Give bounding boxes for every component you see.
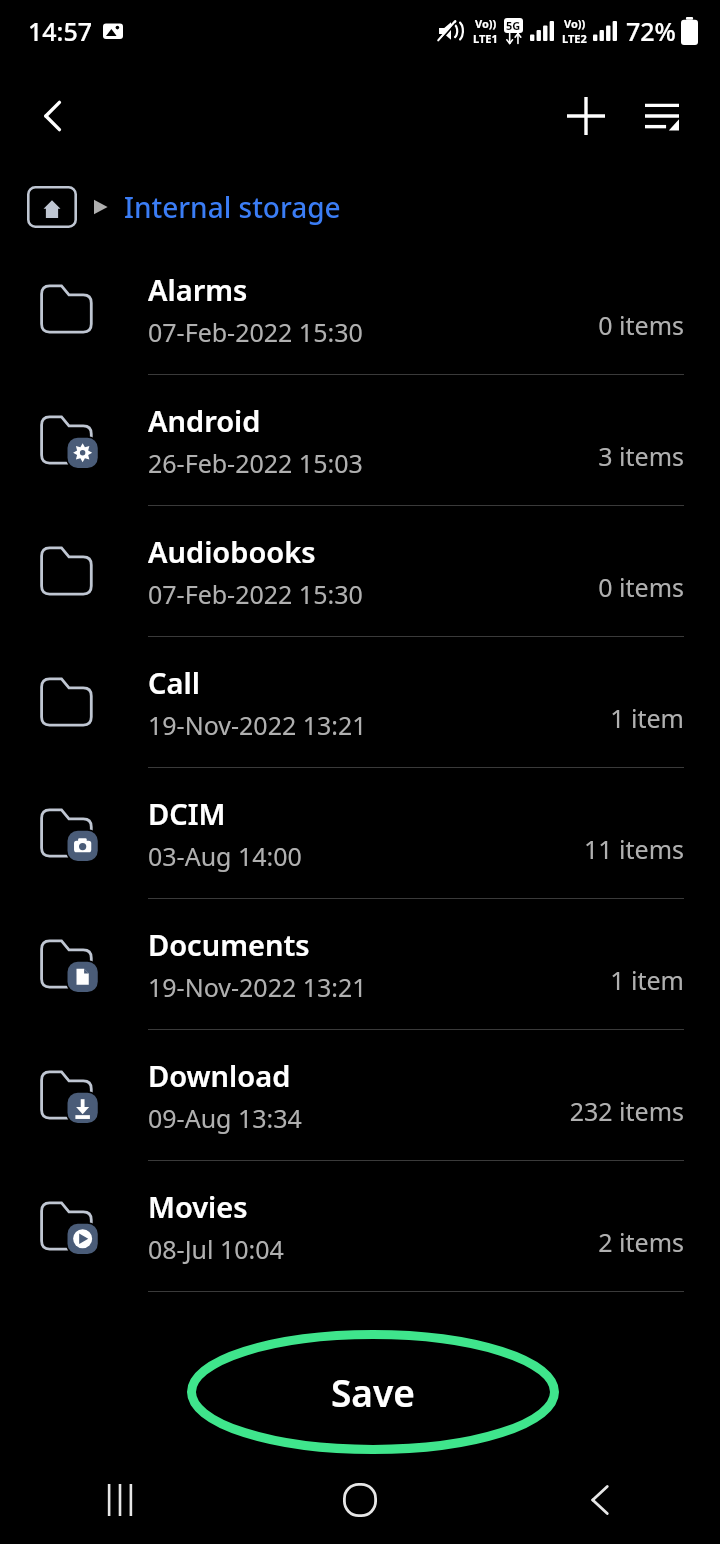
button[interactable]: Call (0, 637, 720, 767)
button[interactable]: Alarms (0, 244, 720, 374)
button[interactable]: Movies (0, 1161, 720, 1291)
button[interactable]: Back (480, 1456, 720, 1544)
staticText: Save (331, 1367, 415, 1417)
button[interactable]: Documents (0, 899, 720, 1029)
button[interactable]: Recents (0, 1456, 240, 1544)
button[interactable]: Internal storage (124, 188, 341, 226)
staticText: Call (148, 663, 200, 702)
staticText: Internal storage (124, 188, 341, 226)
staticText: 03-Aug 14:00 (148, 839, 302, 873)
staticText: Movies (148, 1187, 248, 1226)
staticText: 232 items (569, 1094, 684, 1128)
staticText: 14:57 (28, 14, 93, 48)
staticText: Documents (148, 925, 310, 964)
staticText: 3 items (598, 439, 684, 473)
button[interactable]: Audiobooks (0, 506, 720, 636)
staticText: 08-Jul 10:04 (148, 1232, 284, 1266)
staticText: Android (148, 401, 261, 440)
staticText: 26-Feb-2022 15:03 (148, 446, 363, 480)
button[interactable]: Home (24, 179, 80, 235)
staticText: 07-Feb-2022 15:30 (148, 315, 363, 349)
button[interactable]: Android (0, 375, 720, 505)
staticText: 2 items (598, 1225, 684, 1259)
button[interactable]: Download (0, 1030, 720, 1160)
staticText: Vo)) (475, 16, 497, 31)
staticText: 19-Nov-2022 13:21 (148, 708, 367, 742)
button[interactable]: Create folder (550, 80, 622, 152)
staticText: 09-Aug 13:34 (148, 1101, 302, 1135)
staticText: 0 items (598, 308, 684, 342)
staticText: 0 items (598, 570, 684, 604)
staticText: DCIM (148, 794, 226, 833)
staticText: 07-Feb-2022 15:30 (148, 577, 363, 611)
staticText: 1 item (610, 701, 684, 735)
button[interactable]: Sort (626, 80, 698, 152)
staticText: Alarms (148, 270, 248, 309)
button[interactable]: Save (187, 1330, 559, 1454)
staticText: 5G (506, 18, 521, 33)
staticText: LTE1 (473, 31, 498, 46)
staticText: 72% (626, 14, 676, 48)
staticText: Download (148, 1056, 291, 1095)
button[interactable]: Back (18, 80, 90, 152)
staticText: Vo)) (564, 16, 586, 31)
staticText: 19-Nov-2022 13:21 (148, 970, 367, 1004)
staticText: Audiobooks (148, 532, 316, 571)
staticText: 11 items (583, 832, 684, 866)
button[interactable]: DCIM (0, 768, 720, 898)
staticText: LTE2 (562, 31, 587, 46)
staticText: 1 item (610, 963, 684, 997)
button[interactable]: Home (240, 1456, 480, 1544)
